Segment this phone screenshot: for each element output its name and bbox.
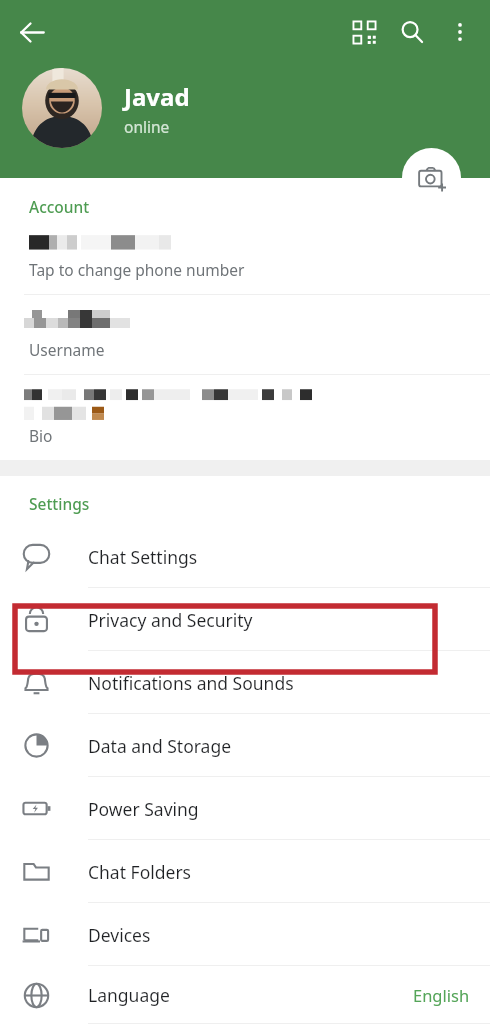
staticText: Username [29,339,105,360]
staticText: Notifications and Sounds [88,671,294,695]
button[interactable]: Power Saving [0,777,490,840]
staticText: Bio [29,425,53,446]
button[interactable]: Tap to change phone number [0,233,490,295]
staticText: Tap to change phone number [29,259,245,280]
button[interactable]: Bio [0,375,490,460]
staticText: online [124,116,170,137]
button[interactable]: Username [0,295,490,375]
button[interactable]: Notifications and Sounds [0,651,490,714]
staticText: Javad [124,80,190,113]
staticText: Account [29,196,90,217]
staticText: Power Saving [88,797,199,821]
button[interactable]: More options [436,8,484,56]
staticText: English [413,984,470,1006]
button[interactable]: Language [0,966,490,1024]
staticText: Settings [29,493,90,514]
staticText: Language [88,983,170,1007]
button[interactable]: Chat Settings [0,525,490,588]
staticText: Chat Folders [88,860,191,884]
button[interactable]: Data and Storage [0,714,490,777]
button[interactable]: Change profile photo [402,148,461,207]
staticText: Devices [88,923,151,947]
button[interactable]: Search [388,8,436,56]
button[interactable]: Chat Folders [0,840,490,903]
staticText: Chat Settings [88,545,198,569]
button[interactable]: Javad [22,68,190,148]
button[interactable]: Privacy and Security [0,588,490,651]
button[interactable]: QR code [340,8,388,56]
staticText: Privacy and Security [88,608,253,632]
button[interactable]: Devices [0,903,490,966]
staticText: Data and Storage [88,734,232,758]
button[interactable]: Back [8,8,56,56]
